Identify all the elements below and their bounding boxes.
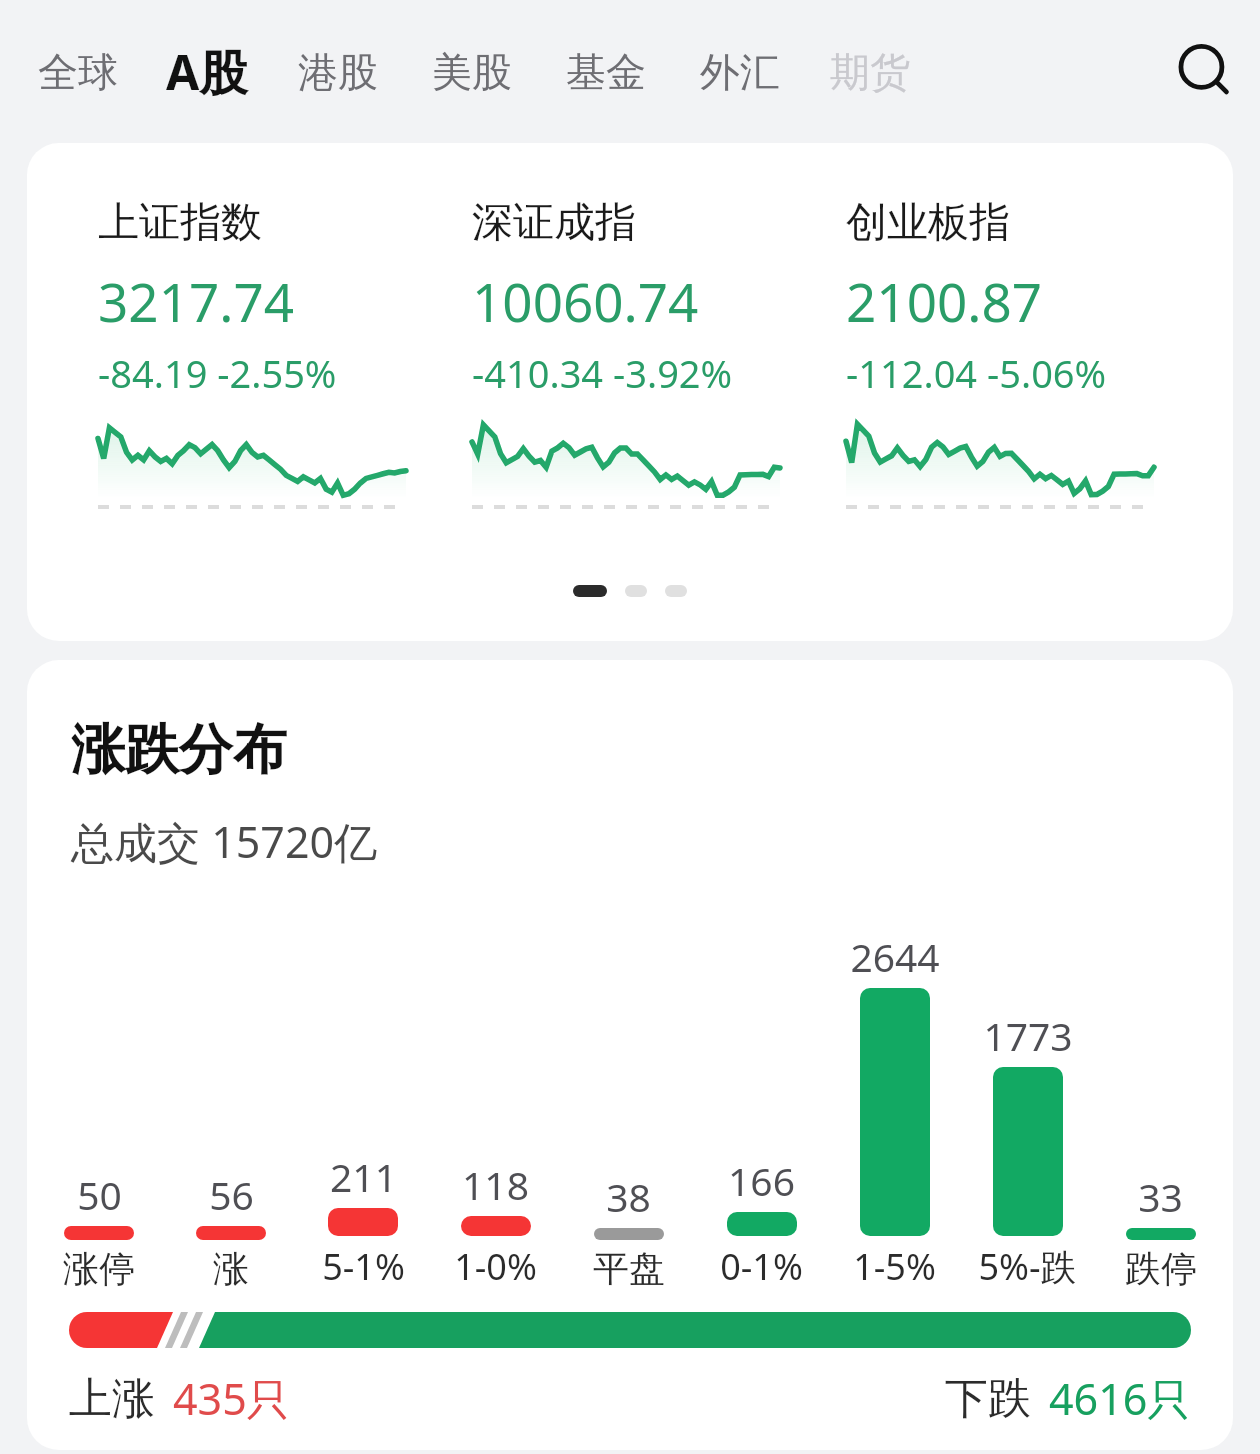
- staticText: 5-1%: [322, 1242, 405, 1291]
- button[interactable]: A股: [166, 39, 248, 105]
- staticText: 涨跌分布: [71, 716, 287, 784]
- button[interactable]: 外汇: [700, 47, 780, 97]
- button[interactable]: 基金: [566, 47, 646, 97]
- button[interactable]: 期货: [830, 47, 910, 97]
- staticText: 1773: [983, 1009, 1073, 1062]
- staticText: 1-0%: [454, 1242, 537, 1291]
- staticText: 上证指数: [98, 197, 262, 249]
- staticText: 下跌: [945, 1372, 1031, 1426]
- button[interactable]: 港股: [298, 47, 378, 97]
- staticText: 全球: [38, 47, 118, 97]
- staticText: 1-5%: [853, 1242, 936, 1291]
- staticText: 118: [462, 1158, 529, 1211]
- staticText: 外汇: [700, 47, 780, 97]
- staticText: 创业板指: [846, 197, 1010, 249]
- button[interactable]: Search: [1160, 28, 1248, 116]
- staticText: 港股: [298, 47, 378, 97]
- button[interactable]: 美股: [432, 47, 512, 97]
- staticText: 2644: [850, 930, 940, 983]
- staticText: 2100.87: [846, 265, 1043, 337]
- staticText: 涨停: [63, 1246, 135, 1291]
- staticText: 4616只: [1049, 1369, 1191, 1428]
- staticText: 211: [330, 1150, 397, 1203]
- staticText: -410.34 -3.92%: [472, 347, 733, 399]
- staticText: 上涨: [69, 1372, 155, 1426]
- button[interactable]: 上证指数: [27, 143, 1233, 641]
- button[interactable]: 全球: [38, 47, 118, 97]
- staticText: 435只: [173, 1369, 290, 1428]
- staticText: A股: [166, 39, 248, 105]
- staticText: -112.04 -5.06%: [846, 347, 1107, 399]
- staticText: 56: [209, 1168, 254, 1221]
- staticText: 美股: [432, 47, 512, 97]
- staticText: 跌停: [1125, 1246, 1197, 1291]
- staticText: 深证成指: [472, 197, 636, 249]
- button[interactable]: 涨跌分布: [27, 660, 1233, 1450]
- staticText: 平盘: [593, 1246, 665, 1291]
- staticText: 10060.74: [472, 265, 699, 337]
- staticText: 5%-跌停: [961, 1242, 1094, 1291]
- staticText: 33: [1138, 1170, 1183, 1223]
- staticText: 50: [77, 1168, 122, 1221]
- staticText: 涨停-5%: [165, 1246, 297, 1291]
- staticText: 总成交 15720亿: [71, 812, 378, 871]
- staticText: 期货: [830, 47, 910, 97]
- staticText: 38: [606, 1170, 651, 1223]
- staticText: 166: [728, 1154, 795, 1207]
- staticText: 0-1%: [720, 1242, 803, 1291]
- staticText: 基金: [566, 47, 646, 97]
- staticText: 3217.74: [98, 265, 295, 337]
- staticText: -84.19 -2.55%: [98, 347, 337, 399]
